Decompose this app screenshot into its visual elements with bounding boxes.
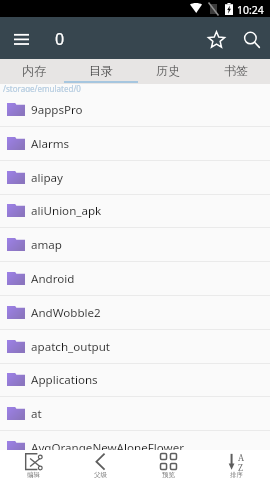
staticText: alipay <box>31 170 64 186</box>
staticText: Alarms <box>31 136 70 152</box>
button[interactable]: aliUnion_apk <box>0 194 270 227</box>
staticText: /storage/emulated/0 <box>3 83 81 92</box>
staticText: A <box>238 452 244 464</box>
button[interactable]: Applications <box>0 363 270 396</box>
button[interactable]: A <box>202 450 270 480</box>
button[interactable]: 书签 <box>202 59 270 82</box>
button[interactable]: amap <box>0 228 270 261</box>
button[interactable]: alipay <box>0 161 270 194</box>
button[interactable]: Menu <box>3 21 39 57</box>
button[interactable]: Search <box>233 21 270 58</box>
button[interactable]: 历史 <box>134 59 202 82</box>
button[interactable]: at <box>0 397 270 430</box>
staticText: apatch_output <box>31 339 111 355</box>
staticText: 历史 <box>156 63 180 78</box>
staticText: at <box>31 406 42 422</box>
staticText: AndWobble2 <box>31 305 101 321</box>
staticText: 预览 <box>162 471 175 479</box>
staticText: AvgOrangeNewAloneFlower <box>31 440 184 450</box>
staticText: 编辑 <box>27 471 40 479</box>
button[interactable]: Android <box>0 262 270 295</box>
staticText: 9appsPro <box>31 102 83 118</box>
staticText: 父级 <box>94 471 107 479</box>
button[interactable]: Alarms <box>0 127 270 160</box>
button[interactable]: 预览 <box>134 450 202 480</box>
button[interactable]: 目录 <box>67 59 134 82</box>
staticText: 目录 <box>89 63 113 78</box>
staticText: 书签 <box>224 63 248 78</box>
button[interactable]: 9appsPro <box>0 93 270 126</box>
button[interactable]: Favorites <box>198 21 235 58</box>
staticText: 排序 <box>230 471 243 479</box>
staticText: 10:24 <box>237 3 264 17</box>
staticText: Applications <box>31 372 98 388</box>
button[interactable]: AvgOrangeNewAloneFlower <box>0 431 270 450</box>
staticText: 内存 <box>22 63 46 78</box>
button[interactable]: 父级 <box>67 450 134 480</box>
button[interactable]: 内存 <box>0 59 67 82</box>
button[interactable]: apatch_output <box>0 330 270 363</box>
staticText: Android <box>31 271 75 287</box>
staticText: amap <box>31 237 62 253</box>
staticText: 0 <box>55 28 65 50</box>
staticText: Z <box>238 462 244 474</box>
button[interactable]: AndWobble2 <box>0 296 270 329</box>
button[interactable]: 编辑 <box>0 450 67 480</box>
staticText: aliUnion_apk <box>31 203 102 219</box>
